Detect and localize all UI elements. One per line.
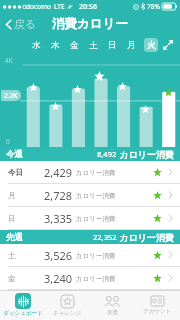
staticText: 先週 xyxy=(6,232,23,243)
staticText: 4K xyxy=(5,56,13,65)
staticText: 3,240 xyxy=(44,271,73,286)
button[interactable]: アカウント xyxy=(135,290,180,320)
staticText: 日 xyxy=(8,214,30,223)
button[interactable]: 今日 xyxy=(0,161,180,183)
button[interactable]: 金 xyxy=(65,35,84,55)
staticText: アカウント xyxy=(143,308,172,315)
staticText: 戻る xyxy=(14,17,37,31)
staticText: 金 xyxy=(70,40,79,51)
button[interactable]: 火 xyxy=(141,35,160,55)
button[interactable]: 土 xyxy=(0,244,180,266)
staticText: カロリー消費 xyxy=(76,192,116,200)
staticText: 2,429 xyxy=(44,165,73,180)
button[interactable]: 水 xyxy=(26,35,46,55)
staticText: カロリー消費 xyxy=(119,149,174,160)
staticText: 消費カロリー xyxy=(52,16,128,32)
staticText: 今日 xyxy=(8,168,30,177)
button[interactable]: 日 xyxy=(0,207,180,229)
staticText: カロリー消費 xyxy=(76,169,116,177)
button[interactable]: 木 xyxy=(46,35,65,55)
button[interactable]: 戻る xyxy=(0,14,43,34)
staticText: 8,492 xyxy=(97,149,117,159)
staticText: 今週 xyxy=(6,149,23,160)
staticText: 木 xyxy=(51,40,60,51)
staticText: ダッシュボード xyxy=(3,310,43,317)
staticText: 土 xyxy=(89,40,98,51)
staticText: 2,728 xyxy=(44,188,73,203)
button[interactable]: 土 xyxy=(84,35,103,55)
staticText: 友達 xyxy=(107,309,118,316)
button[interactable]: 月 xyxy=(122,35,141,55)
staticText: 火 xyxy=(147,40,156,51)
staticText: 日 xyxy=(108,40,117,51)
staticText: 78% xyxy=(147,2,160,11)
staticText: 金 xyxy=(8,274,30,283)
staticText: カロリー消費 xyxy=(119,232,174,243)
staticText: 月 xyxy=(8,191,30,200)
staticText: カロリー消費 xyxy=(76,215,116,223)
staticText: 0 xyxy=(6,137,10,146)
staticText: LTE xyxy=(54,2,65,11)
staticText: チャレンジ xyxy=(53,310,82,317)
staticText: docomo xyxy=(26,2,51,11)
staticText: 22,352 xyxy=(93,232,117,242)
staticText: 水 xyxy=(32,40,41,51)
button[interactable]: Expand xyxy=(160,37,176,53)
staticText: 土 xyxy=(8,251,30,260)
button[interactable]: 金 xyxy=(0,267,180,289)
staticText: カロリー消費 xyxy=(76,252,116,260)
button[interactable]: 月 xyxy=(0,184,180,206)
staticText: 月 xyxy=(127,40,136,51)
staticText: 2.2K xyxy=(4,91,18,100)
staticText: 3,335 xyxy=(44,211,73,226)
button[interactable]: 友達 xyxy=(90,290,135,320)
button[interactable]: ダッシュボード xyxy=(0,290,45,320)
button[interactable]: 日 xyxy=(103,35,122,55)
staticText: 3,526 xyxy=(44,248,73,263)
staticText: カロリー消費 xyxy=(76,275,116,283)
button[interactable]: チャレンジ xyxy=(45,290,90,320)
staticText: 20:56 xyxy=(79,2,97,12)
